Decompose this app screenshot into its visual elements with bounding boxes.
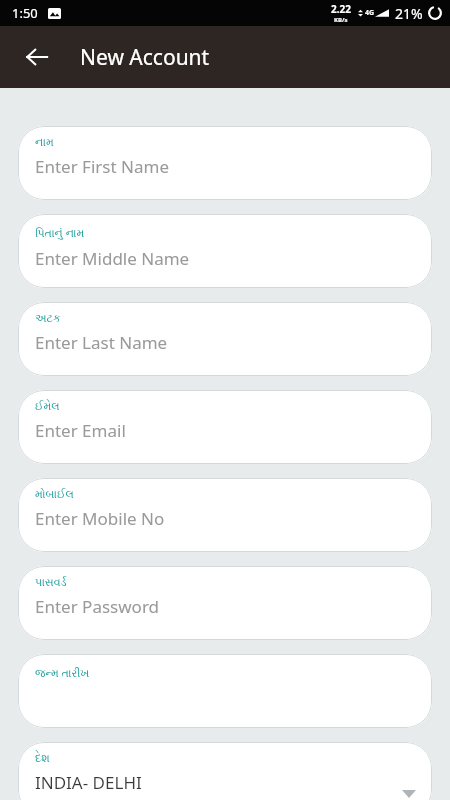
button[interactable]: પાસવર્ડ (18, 566, 432, 640)
button[interactable]: જન્મ તારીખ (18, 654, 432, 728)
staticText: 1:50 (12, 4, 38, 22)
staticText: અટક (35, 313, 61, 324)
button[interactable]: નામ (18, 126, 432, 200)
staticText: Enter Mobile No (35, 507, 165, 530)
button[interactable]: દેશ (18, 742, 432, 800)
staticText: Enter First Name (35, 155, 169, 178)
staticText: ઈમેલ (35, 401, 60, 412)
staticText: પાસવર્ડ (35, 577, 67, 588)
button[interactable]: Back (14, 34, 60, 80)
staticText: 4G (365, 8, 375, 18)
staticText: Enter Password (35, 595, 160, 618)
staticText: Enter Middle Name (35, 247, 190, 270)
staticText: દેશ (35, 753, 50, 764)
staticText: મોબાઈલ (35, 489, 74, 500)
staticText: નામ (35, 137, 54, 148)
button[interactable]: ઈમેલ (18, 390, 432, 464)
staticText: 21% (395, 4, 423, 23)
staticText: પિતાનું નામ (35, 225, 85, 240)
button[interactable]: પિતાનું નામ (18, 214, 432, 288)
staticText: જન્મ તારીખ (35, 665, 90, 680)
staticText: Enter Email (35, 419, 126, 442)
button[interactable]: અટક (18, 302, 432, 376)
button[interactable]: મોબાઈલ (18, 478, 432, 552)
staticText: INDIA- DELHI (35, 771, 142, 794)
staticText: KB/s (334, 16, 348, 24)
staticText: 2.22 (331, 2, 351, 16)
staticText: Enter Last Name (35, 331, 168, 354)
staticText: New Account (80, 43, 210, 72)
